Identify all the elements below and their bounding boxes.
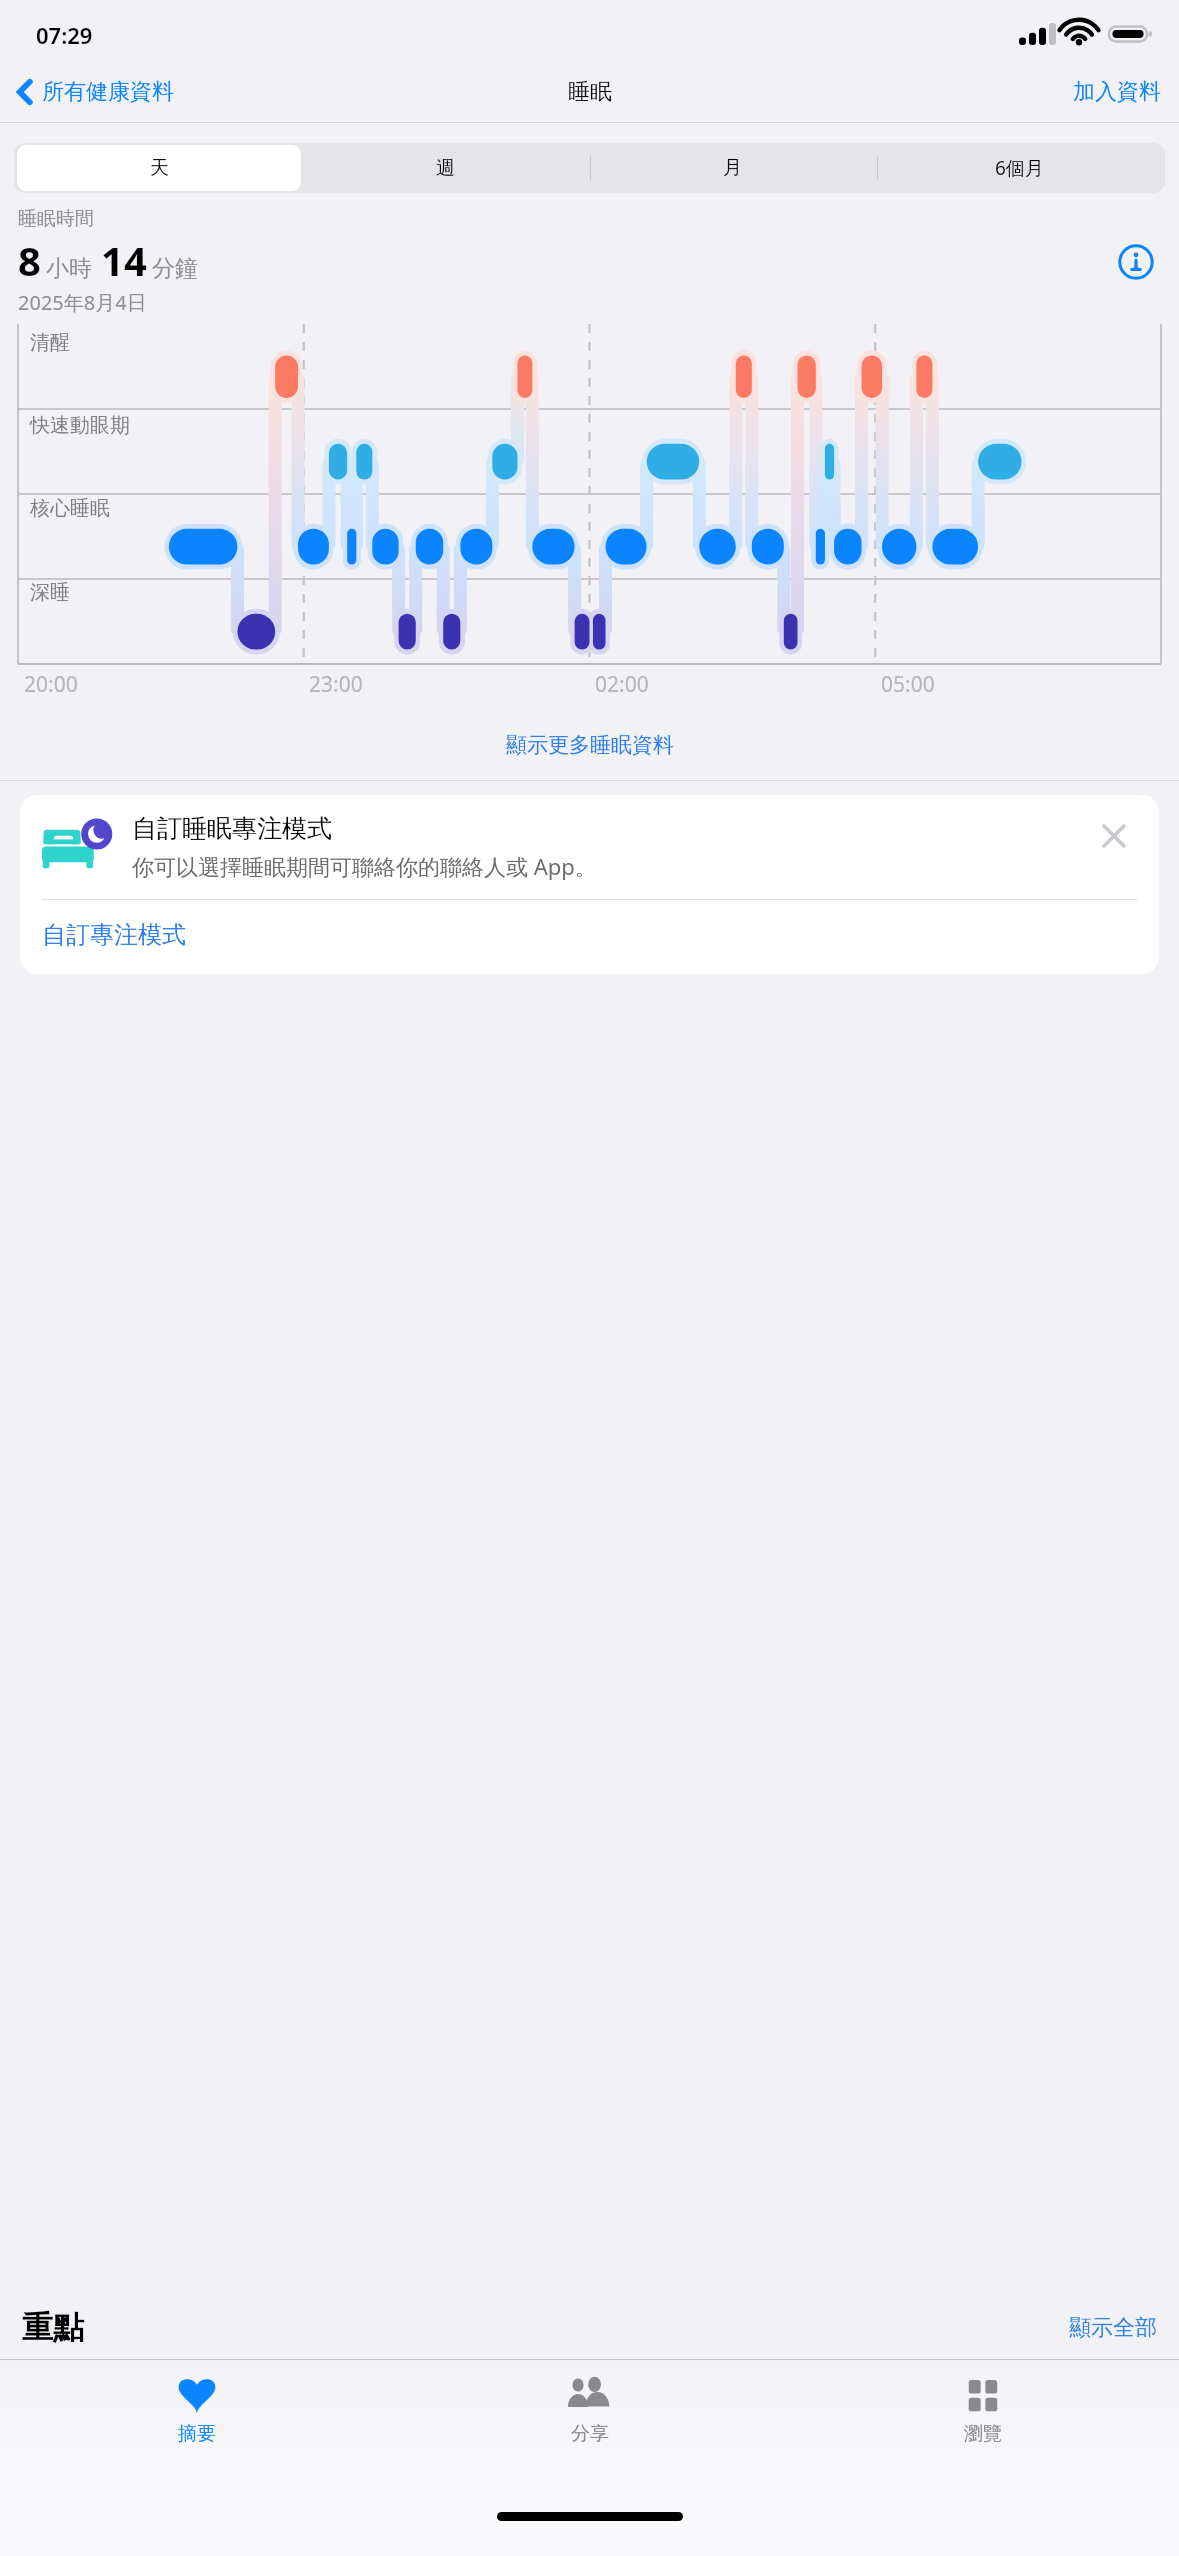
button[interactable]: 6個月 <box>877 145 1162 191</box>
staticText: 深睡 <box>30 580 70 605</box>
button[interactable]: 顯示更多睡眠資料 <box>0 724 1179 766</box>
staticText: 自訂睡眠專注模式 <box>132 813 332 844</box>
button[interactable]: 摘要 <box>0 2360 393 2502</box>
staticText: 睡眠 <box>568 78 612 106</box>
staticText: 週 <box>436 156 455 180</box>
staticText: 分享 <box>571 2422 609 2446</box>
button[interactable]: 加入資料 <box>1055 67 1179 117</box>
button[interactable]: 關閉 <box>1091 813 1137 859</box>
staticText: 分鐘 <box>152 254 198 283</box>
button[interactable]: 月 <box>590 145 875 191</box>
staticText: 顯示更多睡眠資料 <box>506 732 674 758</box>
staticText: 02:00 <box>595 670 649 699</box>
staticText: 20:00 <box>24 670 78 699</box>
staticText: 所有健康資料 <box>42 78 174 106</box>
staticText: 自訂專注模式 <box>42 920 186 950</box>
staticText: 6個月 <box>995 155 1044 181</box>
staticText: 顯示全部 <box>1069 2314 1157 2342</box>
staticText: 瀏覽 <box>964 2422 1002 2446</box>
staticText: 核心睡眠 <box>30 496 110 521</box>
staticText: 小時 <box>46 254 92 283</box>
button[interactable]: 所有健康資料 <box>0 67 184 117</box>
button[interactable]: 天 <box>17 145 301 191</box>
staticText: 8 <box>18 233 41 287</box>
staticText: 睡眠時間 <box>18 207 94 231</box>
staticText: 天 <box>150 156 169 180</box>
staticText: 2025年8月4日 <box>18 289 147 316</box>
staticText: 快速動眼期 <box>30 413 130 438</box>
button[interactable]: 瀏覽 <box>786 2360 1179 2502</box>
button[interactable]: 自訂專注模式 <box>42 900 1137 956</box>
staticText: 重點 <box>22 2308 84 2347</box>
staticText: 05:00 <box>881 670 935 699</box>
staticText: 23:00 <box>309 670 363 699</box>
staticText: 清醒 <box>30 330 70 355</box>
staticText: 14 <box>101 233 147 287</box>
button[interactable]: 分享 <box>393 2360 786 2502</box>
staticText: 加入資料 <box>1073 78 1161 106</box>
button[interactable]: 顯示全部 <box>1069 2314 1157 2342</box>
staticText: 月 <box>723 156 742 180</box>
staticText: 07:29 <box>36 20 93 50</box>
staticText: 摘要 <box>178 2422 216 2446</box>
button[interactable]: 資訊 <box>1111 237 1161 287</box>
staticText: 你可以選擇睡眠期間可聯絡你的聯絡人或 App。 <box>132 851 597 881</box>
button[interactable]: 週 <box>303 145 588 191</box>
